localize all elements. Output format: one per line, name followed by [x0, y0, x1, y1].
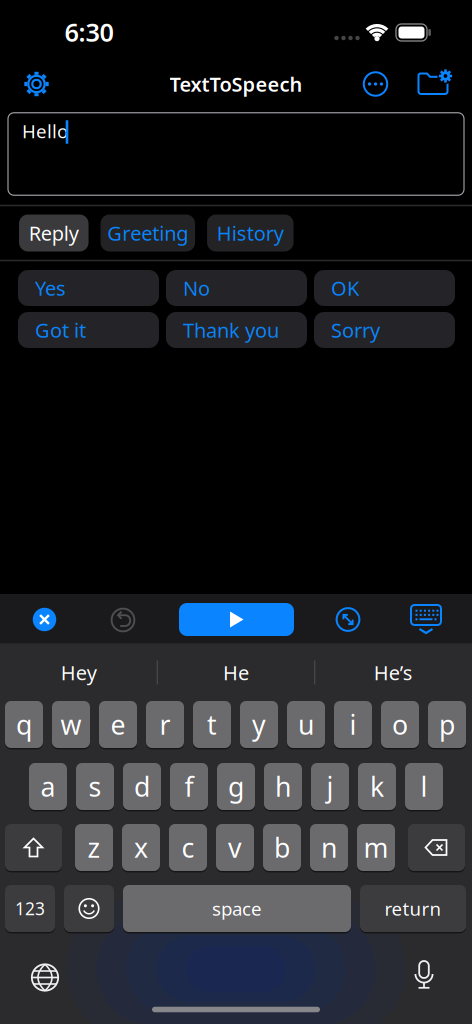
button[interactable]: Undo [109, 606, 137, 634]
button[interactable]: No [166, 270, 307, 306]
staticText: Hey [61, 659, 97, 686]
staticText: Hello [22, 119, 68, 143]
staticText: return [384, 896, 441, 921]
button[interactable]: Text to speak [8, 113, 464, 195]
staticText: Reply [29, 220, 79, 246]
button[interactable]: q [5, 700, 43, 749]
button[interactable]: Shift [5, 823, 62, 872]
staticText: h [275, 769, 291, 804]
staticText: Got it [35, 317, 86, 343]
staticText: l [420, 769, 427, 804]
staticText: Greeting [107, 220, 188, 246]
button[interactable]: Settings [18, 66, 54, 102]
button[interactable]: Next keyboard [30, 962, 60, 992]
button[interactable]: l [405, 762, 443, 811]
button[interactable]: m [357, 823, 395, 872]
staticText: f [184, 769, 193, 804]
button[interactable]: u [287, 700, 325, 749]
staticText: He’s [374, 659, 413, 686]
button[interactable]: v [216, 823, 254, 872]
staticText: space [212, 896, 262, 921]
button[interactable]: x [122, 823, 160, 872]
staticText: s [88, 769, 101, 804]
button[interactable]: c [169, 823, 207, 872]
button[interactable]: g [217, 762, 255, 811]
staticText: 123 [15, 897, 45, 920]
staticText: a [40, 769, 55, 804]
button[interactable]: Speak [179, 603, 294, 636]
button[interactable]: History [207, 214, 294, 251]
staticText: Yes [35, 275, 66, 301]
staticText: TextToSpeech [169, 71, 302, 97]
staticText: r [159, 707, 170, 742]
button[interactable]: w [52, 700, 90, 749]
staticText: History [217, 220, 284, 246]
staticText: OK [331, 275, 359, 301]
button[interactable]: He’s [318, 650, 468, 694]
button[interactable]: j [311, 762, 349, 811]
staticText: i [349, 707, 356, 742]
button[interactable]: He [161, 650, 311, 694]
button[interactable]: h [264, 762, 302, 811]
staticText: k [370, 769, 384, 804]
button[interactable]: Greeting [101, 214, 195, 251]
button[interactable]: i [334, 700, 372, 749]
staticText: x [134, 830, 148, 865]
staticText: 6:30 [64, 15, 113, 49]
button[interactable]: More options [360, 69, 390, 99]
button[interactable]: a [29, 762, 67, 811]
staticText: He [223, 659, 249, 686]
staticText: o [392, 707, 408, 742]
button[interactable]: Sorry [314, 312, 455, 348]
button[interactable]: Manage folders [414, 69, 452, 99]
button[interactable]: d [123, 762, 161, 811]
button[interactable]: f [170, 762, 208, 811]
button[interactable]: e [99, 700, 137, 749]
button[interactable]: Resize text area [334, 605, 362, 633]
button[interactable]: k [358, 762, 396, 811]
button[interactable]: Thank you [166, 312, 307, 348]
staticText: m [363, 830, 388, 865]
button[interactable]: Dictate [409, 960, 439, 990]
button[interactable]: Dismiss keyboard [409, 604, 443, 635]
button[interactable]: Got it [18, 312, 159, 348]
staticText: y [252, 707, 266, 742]
button[interactable]: t [193, 700, 231, 749]
button[interactable]: n [310, 823, 348, 872]
button[interactable]: Numbers [5, 884, 55, 933]
staticText: v [228, 830, 242, 865]
button[interactable]: z [75, 823, 113, 872]
staticText: q [16, 707, 32, 742]
staticText: b [274, 830, 290, 865]
button[interactable]: Delete [408, 823, 465, 872]
button[interactable]: s [76, 762, 114, 811]
button[interactable]: Emoji [64, 884, 114, 933]
staticText: p [439, 707, 455, 742]
staticText: j [326, 769, 333, 804]
staticText: z [87, 830, 100, 865]
staticText: e [110, 707, 125, 742]
button[interactable]: p [428, 700, 466, 749]
button[interactable]: Clear text [30, 605, 58, 633]
button[interactable]: Space [123, 884, 351, 933]
button[interactable]: r [146, 700, 184, 749]
button[interactable]: Hey [4, 650, 154, 694]
staticText: c [181, 830, 194, 865]
button[interactable]: Yes [18, 270, 159, 306]
staticText: Thank you [183, 317, 279, 343]
staticText: u [298, 707, 314, 742]
button[interactable]: Return [360, 884, 466, 933]
button[interactable]: o [381, 700, 419, 749]
staticText: t [207, 707, 217, 742]
staticText: w [60, 707, 81, 742]
staticText: Sorry [331, 317, 380, 343]
staticText: g [228, 769, 244, 804]
button[interactable]: b [263, 823, 301, 872]
staticText: No [183, 275, 210, 301]
button[interactable]: Reply [19, 214, 88, 251]
staticText: d [134, 769, 150, 804]
button[interactable]: y [240, 700, 278, 749]
button[interactable]: OK [314, 270, 455, 306]
staticText: n [321, 830, 337, 865]
